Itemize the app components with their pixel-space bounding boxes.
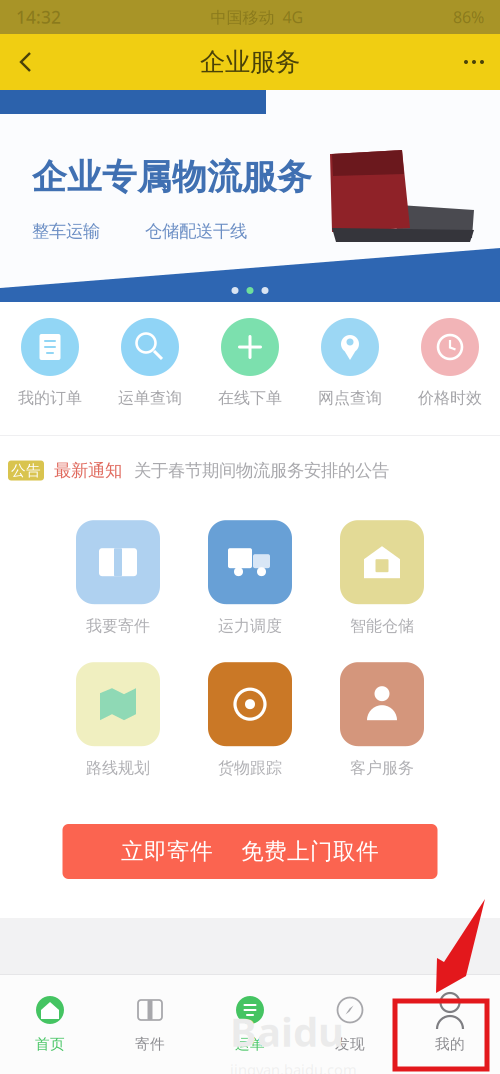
button[interactable]: 我要寄件 [76, 515, 160, 641]
button[interactable]: 更多 [448, 34, 500, 90]
button[interactable]: 运力调度 [208, 515, 292, 641]
button[interactable]: 运单 [200, 975, 300, 1074]
staticText: 运力调度 [218, 616, 282, 636]
button[interactable]: 网点查询 [300, 302, 400, 435]
staticText: 网点查询 [318, 388, 382, 408]
button[interactable]: 首页 [0, 975, 100, 1074]
staticText: 整车运输 仓储配送干线 [32, 221, 247, 242]
button[interactable]: 价格时效 [400, 302, 500, 435]
staticText: 关于春节期间物流服务安排的公告 [134, 460, 389, 481]
staticText: 价格时效 [418, 388, 482, 408]
button[interactable]: 返回 [0, 34, 52, 90]
staticText: 中国移动 4G [210, 6, 303, 28]
button[interactable]: 发现 [300, 975, 400, 1074]
staticText: 智能仓储 [350, 616, 414, 636]
staticText: 运单 [235, 1035, 265, 1053]
button[interactable]: 我的订单 [0, 302, 100, 435]
button[interactable]: 货物跟踪 [208, 657, 292, 783]
staticText: 客户服务 [350, 758, 414, 778]
button[interactable]: 企业专属物流服务 [0, 90, 500, 302]
staticText: 发现 [335, 1035, 365, 1053]
staticText: Baidu [230, 1005, 344, 1058]
staticText: 在线下单 [218, 388, 282, 408]
staticText: 14:32 [16, 5, 61, 28]
staticText: 企业服务 [200, 46, 300, 77]
staticText: jingyan.baidu.com [230, 1060, 357, 1074]
button[interactable]: 立即寄件 免费上门取件 [62, 824, 437, 879]
staticText: 路线规划 [86, 758, 150, 778]
staticText: 首页 [35, 1035, 65, 1053]
staticText: 运单查询 [118, 388, 182, 408]
staticText: 寄件 [135, 1035, 165, 1053]
button[interactable]: 我的 [400, 975, 500, 1074]
staticText: 企业专属物流服务 [32, 156, 312, 199]
staticText: 我要寄件 [86, 616, 150, 636]
staticText: 立即寄件 免费上门取件 [121, 838, 379, 865]
staticText: 我的订单 [18, 388, 82, 408]
staticText: 86% [453, 6, 484, 28]
staticText: 我的 [435, 1035, 465, 1053]
staticText: 最新通知 [54, 460, 122, 481]
staticText: 公告 [11, 461, 41, 479]
staticText: 货物跟踪 [218, 758, 282, 778]
button[interactable]: 公告 [0, 435, 500, 505]
button[interactable]: 智能仓储 [340, 515, 424, 641]
button[interactable]: 在线下单 [200, 302, 300, 435]
button[interactable]: 客户服务 [340, 657, 424, 783]
button[interactable]: 运单查询 [100, 302, 200, 435]
button[interactable]: 路线规划 [76, 657, 160, 783]
button[interactable]: 寄件 [100, 975, 200, 1074]
